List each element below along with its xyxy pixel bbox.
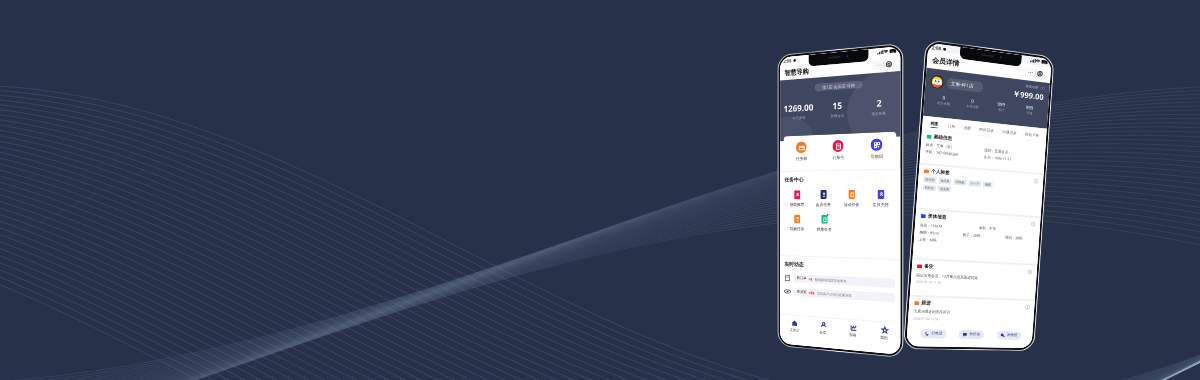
staticText: 待办任务 <box>872 111 886 117</box>
staticText: 智慧导购 <box>784 66 809 77</box>
staticText: 生日关怀 <box>873 202 889 207</box>
staticText: 15 <box>832 99 843 111</box>
staticText: 新订单 <box>797 276 807 281</box>
button[interactable]: Edit <box>1025 305 1030 310</box>
button[interactable]: 会员 <box>808 321 838 337</box>
staticText: 订单 <box>947 123 956 129</box>
staticText: 职场风 <box>955 180 965 185</box>
staticText: 形体信息 <box>928 213 947 221</box>
staticText: 第1店·会员店·导购 <box>822 82 855 90</box>
button[interactable]: 任务箱 <box>784 141 819 161</box>
button[interactable]: 时尚型 <box>925 177 935 182</box>
staticText: 裤子：26码 <box>962 232 1005 240</box>
button[interactable]: 新订单 <box>784 273 895 288</box>
staticText: 面试沟通会员，12月重点维系跟进对象 <box>916 272 978 280</box>
staticText: 艾琳·科1店 <box>950 80 975 90</box>
staticText: 备注 <box>924 263 934 270</box>
button[interactable]: 活动任务 <box>837 190 866 207</box>
staticText: 实时动态 <box>784 261 804 268</box>
staticText: 1269.00 <box>784 100 814 114</box>
staticText: 2 <box>876 96 882 109</box>
staticText: 会员 <box>819 330 827 336</box>
button[interactable]: 发短信 <box>962 332 980 337</box>
button[interactable]: 导购任务 <box>784 214 810 231</box>
staticText: 智能推荐 <box>790 202 805 207</box>
staticText: 偏瘦 <box>985 182 991 187</box>
staticText: 消费 <box>963 125 971 131</box>
button[interactable]: 简约风 <box>925 186 934 190</box>
button[interactable]: 工作台 <box>780 318 808 334</box>
staticText: 档案 <box>930 121 939 126</box>
button[interactable]: 积分记录 <box>975 126 999 134</box>
button[interactable]: 订单号 <box>819 139 857 160</box>
button[interactable]: 生日关怀 <box>866 190 895 207</box>
staticText: 小个子 <box>970 181 979 186</box>
staticText: 打电话 <box>931 331 943 337</box>
button[interactable]: 新浏览 <box>784 287 895 303</box>
staticText: ￥999.00 <box>1012 88 1045 102</box>
staticText: 生日：1990-11-11 <box>984 154 1040 164</box>
button[interactable]: 拼单任务 <box>810 215 838 232</box>
button[interactable]: 沟通记录 <box>998 129 1021 136</box>
staticText: 累计 <box>998 108 1005 112</box>
staticText: +5 <box>808 277 813 282</box>
staticText: 工作台 <box>790 328 799 334</box>
staticText: 权益卡券 <box>1025 131 1040 138</box>
staticText: 胸围：85cm <box>919 229 963 237</box>
button[interactable]: 订单 <box>942 123 960 130</box>
staticText: 活动任务 <box>844 202 860 207</box>
staticText: 个人标签 <box>931 169 950 176</box>
staticText: 0 <box>942 94 946 101</box>
staticText: 刚刚新增品牌活动发布 <box>815 278 847 283</box>
button[interactable]: 偏瘦 <box>985 182 991 187</box>
button[interactable]: 淑女风 <box>940 187 949 191</box>
staticText: 发微信 <box>1007 333 1018 338</box>
staticText: 休闲风 <box>940 179 950 183</box>
staticText: (元) <box>1040 86 1045 90</box>
button[interactable]: 导购码 <box>857 138 896 159</box>
button[interactable]: More options <box>1023 67 1046 79</box>
button[interactable]: 打电话 <box>924 331 943 337</box>
button[interactable]: 发微信 <box>1000 333 1018 338</box>
button[interactable]: 职场风 <box>955 180 965 185</box>
staticText: 体型：中等 <box>979 226 1035 233</box>
staticText: 姓名：艾琳（女） <box>926 143 985 152</box>
staticText: 我的 <box>880 335 888 341</box>
button[interactable]: 休闲风 <box>940 179 950 183</box>
button[interactable]: 档案 <box>925 120 943 129</box>
staticText: 今日业绩 <box>792 116 806 121</box>
staticText: 储值余额 <box>1025 84 1039 90</box>
staticText: 访问客户三日内近期浏览 <box>817 292 852 298</box>
staticText: 2024-01-02 11:36 <box>913 316 939 321</box>
button[interactable]: 权益卡券 <box>1021 131 1044 138</box>
staticText: 订单号 <box>832 155 845 160</box>
staticText: 拼单任务 <box>817 227 832 232</box>
button[interactable]: 会员任务 <box>810 190 837 207</box>
staticText: 新浏览 <box>797 290 807 295</box>
button[interactable]: 报表 <box>838 323 869 340</box>
staticText: 2:08 <box>932 44 941 51</box>
staticText: 等级 <box>1026 111 1033 115</box>
button[interactable]: 我的 <box>869 325 901 342</box>
button[interactable]: Edit <box>1034 178 1039 184</box>
staticText: 沟通记录 <box>1002 129 1018 135</box>
staticText: 999 <box>997 101 1005 107</box>
button[interactable]: Edit <box>1031 221 1036 227</box>
staticText: 时尚型 <box>925 177 935 182</box>
button[interactable]: 智能推荐 <box>784 190 810 207</box>
staticText: 淑女风 <box>940 187 949 191</box>
staticText: 手机：18715940268 <box>925 149 984 159</box>
button[interactable]: More options <box>872 59 895 70</box>
button[interactable]: 消费 <box>959 125 975 131</box>
staticText: 导购任务 <box>790 226 805 231</box>
button[interactable]: 小个子 <box>970 181 979 186</box>
staticText: 46 <box>891 50 894 53</box>
staticText: 报表 <box>849 333 857 339</box>
staticText: 2024-01-02 11:36 <box>916 279 941 285</box>
staticText: 46 <box>1043 61 1046 64</box>
staticText: 级别：普通会员 <box>984 148 1040 157</box>
button[interactable]: Edit <box>1027 269 1032 274</box>
staticText: 跟进 <box>921 300 932 307</box>
staticText: 无意沟通近期安排回访 <box>913 309 950 315</box>
